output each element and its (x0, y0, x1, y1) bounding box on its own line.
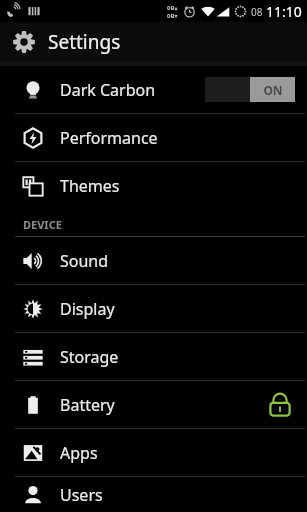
staticText: 0B▴ (167, 4, 178, 12)
button[interactable]: ON (205, 77, 295, 102)
staticText: Performance (60, 127, 158, 149)
staticText: Settings (48, 29, 121, 55)
staticText: DEVICE (23, 217, 62, 232)
other: Locked (265, 390, 295, 420)
button[interactable]: Battery (0, 381, 307, 428)
button[interactable]: Display (0, 285, 307, 332)
staticText: Display (60, 298, 115, 320)
staticText: Themes (60, 175, 120, 197)
staticText: 11:10 (266, 2, 302, 21)
button[interactable]: Settings (0, 22, 307, 62)
button[interactable]: Users (0, 477, 307, 512)
staticText: 08 (251, 5, 263, 19)
staticText: Sound (60, 250, 109, 272)
button[interactable]: Dark Carbon (0, 66, 307, 113)
button[interactable]: Themes (0, 162, 307, 209)
button[interactable]: Performance (0, 114, 307, 161)
staticText: Dark Carbon (60, 79, 156, 101)
button[interactable]: Sound (0, 237, 307, 284)
staticText: Apps (60, 442, 98, 464)
staticText: Users (60, 484, 103, 506)
button[interactable]: Storage (0, 333, 307, 380)
staticText: ON (263, 82, 283, 98)
staticText: Battery (60, 394, 115, 416)
staticText: 0B▾ (167, 12, 178, 20)
button[interactable]: Apps (0, 429, 307, 476)
staticText: Storage (60, 346, 119, 368)
